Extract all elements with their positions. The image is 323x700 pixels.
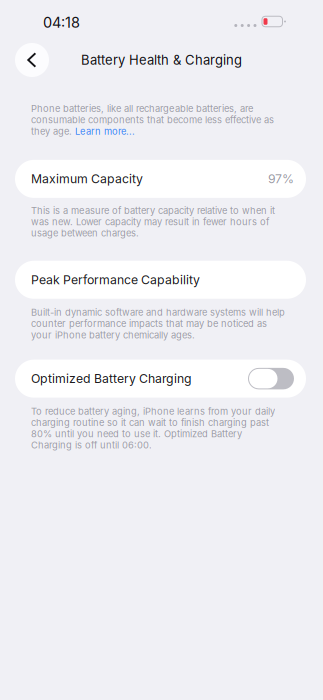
staticText: To reduce battery aging, iPhone learns f… [31, 406, 275, 451]
button[interactable]: Back [15, 43, 49, 77]
staticText: 97% [268, 171, 294, 186]
button[interactable]: Maximum Capacity [0, 160, 323, 198]
staticText: Peak Performance Capability [31, 272, 200, 287]
staticText: Maximum Capacity [31, 171, 143, 186]
staticText: Built-in dynamic software and hardware s… [31, 307, 285, 341]
staticText: This is a measure of battery capacity re… [31, 205, 275, 239]
button[interactable]: Optimized Battery Charging [0, 360, 323, 398]
staticText: Optimized Battery Charging [31, 371, 192, 386]
staticText: 04:18 [43, 14, 80, 31]
staticText: Battery Health & Charging [81, 52, 242, 68]
staticText: Phone batteries, like all rechargeable b… [31, 103, 274, 137]
button[interactable]: Peak Performance Capability [0, 261, 323, 299]
